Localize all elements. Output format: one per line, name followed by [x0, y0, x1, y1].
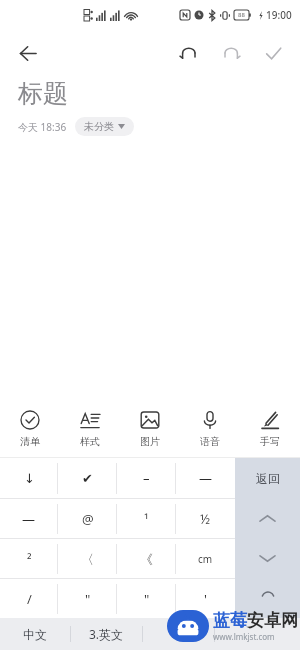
button[interactable]: —	[176, 458, 235, 498]
button[interactable]: 3.英文	[71, 618, 142, 650]
staticText: 未分类	[84, 120, 114, 133]
button[interactable]: 图片	[120, 401, 180, 457]
staticText: 安卓网	[247, 610, 298, 631]
staticText: "	[85, 590, 91, 608]
button[interactable]: 〈	[58, 539, 117, 578]
button[interactable]: Undo	[168, 32, 210, 74]
staticText: 88	[238, 11, 245, 19]
button[interactable]: —	[0, 499, 58, 538]
staticText: ²	[27, 550, 32, 568]
button[interactable]: ¹	[117, 499, 176, 538]
staticText: 标题	[18, 78, 68, 109]
button[interactable]: @	[58, 499, 117, 538]
button[interactable]: 中文	[0, 618, 70, 650]
staticText: 3.英文	[89, 626, 124, 642]
button[interactable]: /	[0, 579, 58, 618]
button[interactable]: 手写	[240, 401, 300, 457]
button[interactable]: ✔	[58, 458, 117, 498]
staticText: 今天 18:36	[18, 120, 67, 134]
staticText: 清单	[20, 435, 40, 448]
button[interactable]: 样式	[60, 401, 120, 457]
button[interactable]: Done	[252, 32, 294, 74]
staticText: —	[22, 510, 36, 528]
staticText: ✔	[82, 471, 93, 486]
button[interactable]: ↓	[0, 458, 58, 498]
button[interactable]: "	[117, 579, 176, 618]
staticText: '	[204, 590, 207, 608]
button[interactable]: 返回	[235, 458, 300, 498]
staticText: 蓝莓	[213, 610, 247, 631]
button[interactable]: Back	[6, 31, 50, 75]
staticText: —	[199, 469, 213, 487]
staticText: 《	[140, 551, 153, 567]
button[interactable]: 清单	[0, 401, 60, 457]
button[interactable]: ²	[0, 539, 58, 578]
staticText: "	[144, 590, 150, 608]
button[interactable]: '	[176, 579, 235, 618]
button[interactable]: 4.	[143, 618, 214, 650]
staticText: –	[143, 469, 150, 487]
button[interactable]: 语音	[180, 401, 240, 457]
staticText: 手写	[260, 435, 280, 448]
staticText: ½	[200, 510, 211, 528]
button[interactable]: –	[117, 458, 176, 498]
button[interactable]: 未分类	[75, 117, 134, 136]
button[interactable]: cm	[176, 539, 235, 578]
staticText: 4.	[173, 626, 184, 642]
staticText: 中文	[23, 627, 47, 642]
staticText: www.lmkjst.com	[213, 631, 275, 642]
staticText: 〈	[81, 551, 94, 567]
button[interactable]: Backspace	[235, 578, 300, 618]
button[interactable]: 《	[117, 539, 176, 578]
staticText: cm	[198, 552, 213, 566]
staticText: @	[82, 510, 94, 528]
staticText: 语音	[200, 435, 220, 448]
button[interactable]: Previous page	[235, 498, 300, 538]
staticText: ¹	[144, 510, 149, 528]
button[interactable]: Redo	[210, 32, 252, 74]
button[interactable]: ½	[176, 499, 235, 538]
staticText: /	[27, 590, 32, 608]
staticText: 19:00	[266, 8, 292, 22]
staticText: 样式	[80, 435, 100, 448]
staticText: 返回	[256, 471, 280, 486]
staticText: ↓	[24, 471, 35, 486]
button[interactable]: Next page	[235, 538, 300, 578]
button[interactable]: "	[58, 579, 117, 618]
staticText: 图片	[140, 435, 160, 448]
